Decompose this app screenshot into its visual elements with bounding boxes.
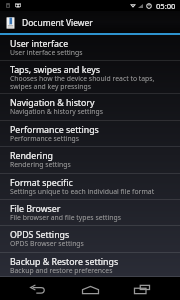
button[interactable]: Taps, swipes and keys [0,61,180,94]
staticText: 05:00 [156,1,176,11]
button[interactable]: Home [62,278,118,300]
button[interactable]: Backup & Restore settings [0,253,180,277]
button[interactable]: Navigation & history [0,94,180,121]
staticText: User interface [10,38,69,50]
staticText: Performance settings [10,134,80,143]
staticText: Format specific [10,177,73,189]
staticText: File browser and file types settings [10,213,121,222]
staticText: File Browser [10,203,61,215]
button[interactable]: Performance settings [0,121,180,147]
staticText: Settings unique to each individual file … [10,187,155,196]
button[interactable]: Format specific [0,174,180,200]
button[interactable]: Back [9,278,65,300]
staticText: Rendering settings [10,160,71,169]
staticText: OPDS Browser settings [10,239,84,248]
button[interactable]: User interface [0,35,180,61]
staticText: Rendering [10,150,53,162]
staticText: Backup & Restore settings [10,256,119,268]
button[interactable]: Recent apps [114,278,170,300]
staticText: Backup and restore preferences [10,266,113,275]
staticText: Performance settings [10,124,99,136]
staticText: Taps, swipes and keys [10,64,100,76]
button[interactable]: Rendering [0,147,180,174]
button[interactable]: File Browser [0,200,180,226]
staticText: Navigation & history settings [10,107,104,116]
staticText: User interface settings [10,48,83,57]
staticText: Document Viewer [22,17,93,29]
staticText: Chooses how the device should react to t… [10,74,172,91]
staticText: OPDS Settings [10,229,70,241]
button[interactable]: OPDS Settings [0,226,180,253]
staticText: Navigation & history [10,97,95,109]
